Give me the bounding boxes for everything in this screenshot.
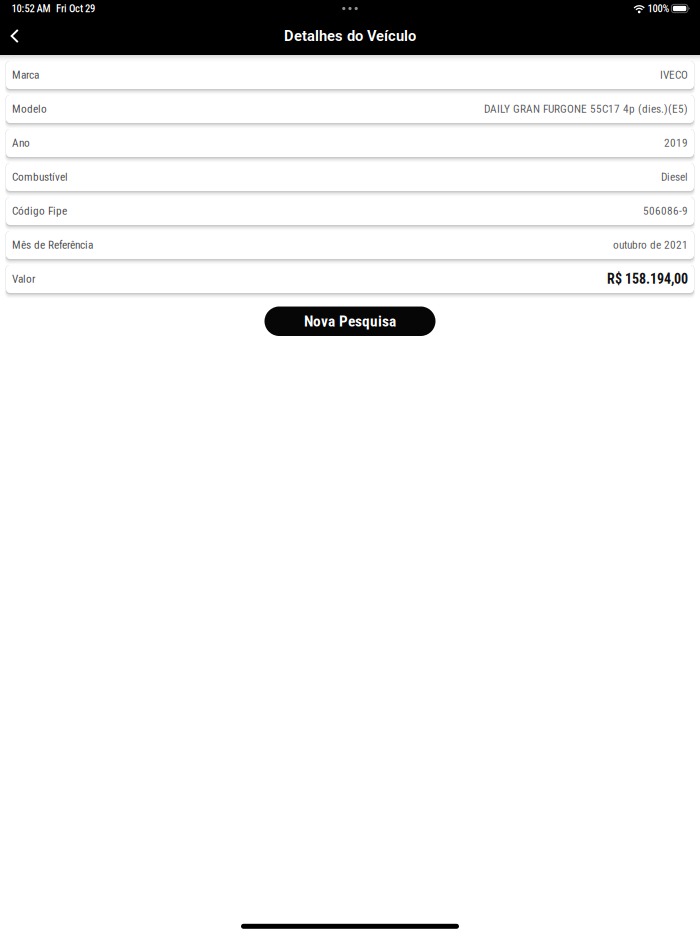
staticText: Modelo: [12, 102, 47, 116]
staticText: IVECO: [660, 68, 688, 82]
button[interactable]: Back: [1, 17, 29, 55]
staticText: Nova Pesquisa: [304, 312, 396, 330]
staticText: Diesel: [661, 170, 688, 184]
staticText: 506086-9: [643, 204, 688, 218]
staticText: DAILY GRAN FURGONE 55C17 4p (dies.)(E5): [484, 102, 688, 116]
staticText: Valor: [12, 272, 35, 286]
staticText: 2019: [664, 136, 688, 150]
staticText: Combustível: [12, 170, 68, 184]
staticText: Mês de Referência: [12, 238, 93, 252]
button[interactable]: Nova Pesquisa: [264, 306, 435, 336]
staticText: Fri Oct 29: [56, 2, 95, 15]
staticText: outubro de 2021: [613, 238, 688, 252]
staticText: R$ 158.194,00: [607, 271, 688, 287]
staticText: Ano: [12, 136, 30, 150]
staticText: Marca: [12, 68, 39, 82]
staticText: 100%: [647, 2, 669, 15]
staticText: 10:52 AM: [11, 2, 50, 15]
staticText: Código Fipe: [12, 204, 67, 218]
staticText: Detalhes do Veículo: [284, 27, 416, 45]
